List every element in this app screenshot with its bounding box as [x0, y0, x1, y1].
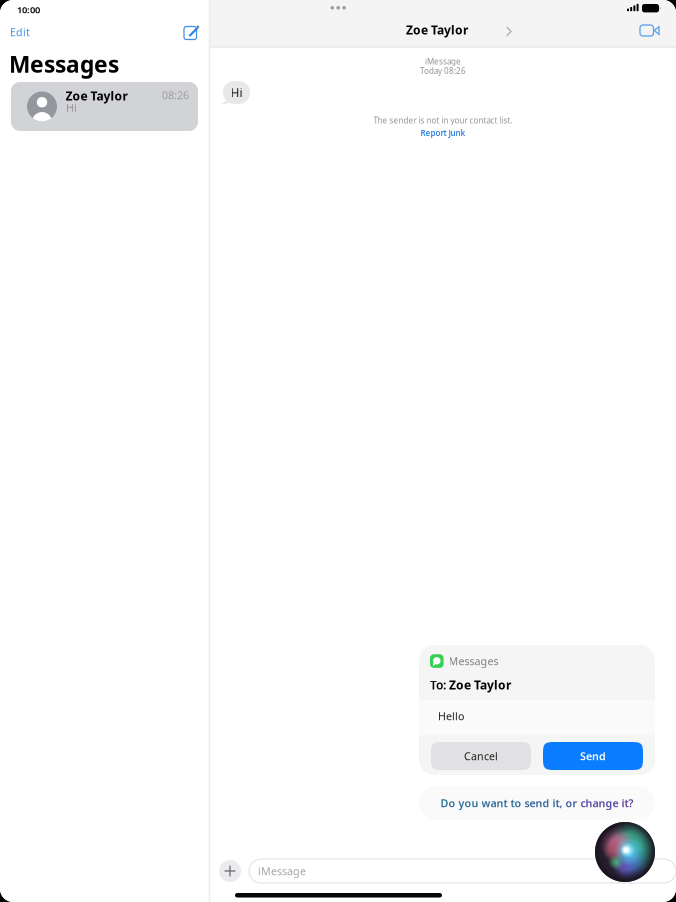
button[interactable]: Send — [543, 742, 643, 770]
staticText: iMessage — [258, 864, 306, 878]
staticText: The sender is not in your contact list. — [373, 115, 512, 126]
staticText: Today 08:26 — [420, 66, 466, 76]
button[interactable]: Report Junk — [420, 128, 465, 138]
button[interactable]: FaceTime — [634, 18, 666, 43]
staticText: To: — [430, 677, 446, 693]
staticText: Hello — [438, 709, 464, 723]
button[interactable]: Cancel — [431, 742, 531, 770]
button[interactable]: Zoe Taylor — [11, 82, 198, 131]
staticText: Do you — [440, 796, 481, 810]
staticText: send it, — [524, 796, 565, 810]
button[interactable]: New Message — [178, 19, 205, 46]
staticText: Zoe Taylor — [449, 677, 511, 693]
staticText: it? — [621, 796, 633, 810]
button[interactable]: Zoe Taylor — [406, 15, 512, 45]
button[interactable]: Do you — [419, 786, 655, 820]
staticText: Zoe Taylor — [65, 88, 127, 104]
staticText: Cancel — [464, 749, 498, 763]
staticText: Messages — [449, 654, 499, 668]
staticText: want to — [481, 796, 524, 810]
staticText: Send — [580, 749, 606, 763]
staticText: or — [565, 796, 580, 810]
staticText: Report Junk — [420, 128, 465, 138]
staticText: Hi — [230, 84, 242, 100]
staticText: 08:26 — [162, 88, 189, 102]
staticText: Messages — [9, 49, 119, 79]
staticText: iMessage — [425, 56, 461, 67]
staticText: Hi — [66, 100, 77, 115]
staticText: Zoe Taylor — [406, 22, 468, 38]
button[interactable]: Edit — [0, 18, 40, 46]
button[interactable]: Add attachment — [219, 860, 241, 882]
staticText: 10:00 — [17, 3, 40, 16]
staticText: change — [580, 796, 621, 810]
staticText: Edit — [10, 25, 30, 39]
